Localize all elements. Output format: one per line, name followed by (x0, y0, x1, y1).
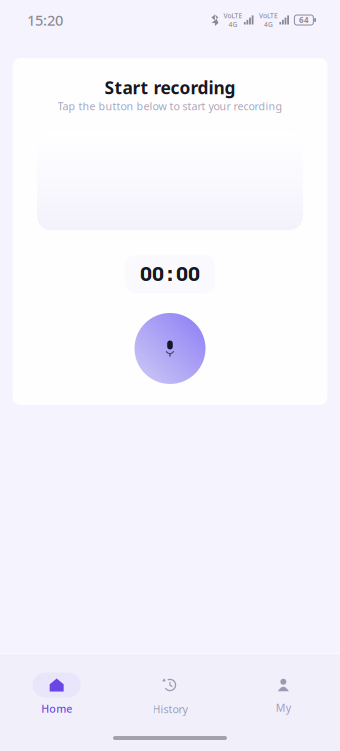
staticText: 64 (299, 15, 309, 25)
button[interactable]: Home (0, 672, 113, 716)
staticText: Home (41, 701, 72, 716)
staticText: 4G (264, 20, 273, 29)
button[interactable]: Start recording (134, 313, 205, 384)
staticText: Start recording (104, 76, 235, 99)
staticText: 15:20 (27, 10, 63, 30)
staticText: 4G (228, 20, 237, 29)
staticText: 00:00 (140, 262, 200, 286)
staticText: VoLTE (259, 11, 278, 20)
staticText: Tap the button below to start your recor… (57, 99, 282, 113)
button[interactable]: My (227, 673, 340, 715)
staticText: History (152, 702, 187, 716)
staticText: VoLTE (223, 11, 242, 20)
staticText: My (276, 700, 291, 715)
button[interactable]: History (113, 672, 227, 716)
